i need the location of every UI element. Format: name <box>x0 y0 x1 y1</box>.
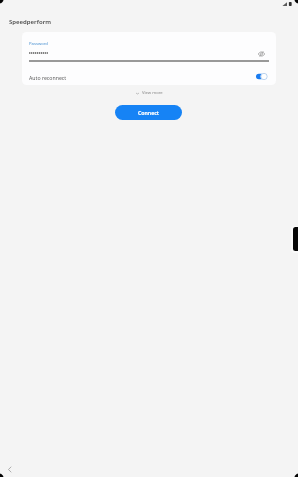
button[interactable]: Show password <box>254 47 268 61</box>
button[interactable]: View more <box>133 88 166 98</box>
staticText: Connect <box>138 109 159 116</box>
button[interactable]: Edge panel handle <box>291 225 298 253</box>
button[interactable]: Back <box>3 463 16 476</box>
staticText: Auto reconnect <box>29 74 67 81</box>
staticText: Password <box>29 41 48 47</box>
staticText: Speedperform <box>9 18 51 26</box>
staticText: View more <box>142 90 163 96</box>
button[interactable]: Auto reconnect toggle <box>253 69 271 84</box>
button[interactable]: Connect <box>115 105 182 120</box>
